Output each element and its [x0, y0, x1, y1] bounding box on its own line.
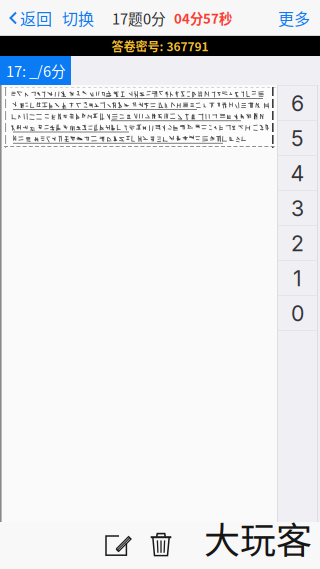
- button[interactable]: 切换: [57, 0, 99, 36]
- staticText: 更多: [278, 6, 310, 30]
- staticText: 答卷密号: 367791: [111, 37, 208, 55]
- staticText: 2: [291, 231, 304, 256]
- button[interactable]: Delete: [150, 531, 172, 560]
- staticText: 17题0分: [112, 7, 166, 29]
- staticText: 大玩客: [204, 512, 312, 564]
- button[interactable]: 3: [278, 191, 317, 226]
- staticText: 3: [291, 196, 304, 221]
- staticText: 1: [293, 266, 302, 291]
- button[interactable]: Annotate: [105, 532, 132, 560]
- button[interactable]: 17: _/6分: [0, 56, 71, 85]
- button[interactable]: 2: [278, 226, 317, 261]
- button[interactable]: 5: [278, 121, 317, 156]
- button[interactable]: 返回: [0, 0, 57, 36]
- staticText: 17: _/6分: [6, 60, 66, 81]
- staticText: 返回: [20, 6, 52, 30]
- button[interactable]: 1: [278, 261, 317, 296]
- staticText: 04分57秒: [174, 8, 232, 28]
- staticText: 5: [291, 126, 304, 151]
- staticText: 0: [291, 301, 304, 326]
- staticText: 6: [291, 91, 304, 116]
- button[interactable]: 4: [278, 156, 317, 191]
- button[interactable]: 0: [278, 296, 317, 331]
- button[interactable]: 6: [278, 86, 317, 121]
- button[interactable]: 更多: [278, 0, 320, 36]
- staticText: 切换: [62, 6, 94, 30]
- staticText: 4: [290, 161, 304, 186]
